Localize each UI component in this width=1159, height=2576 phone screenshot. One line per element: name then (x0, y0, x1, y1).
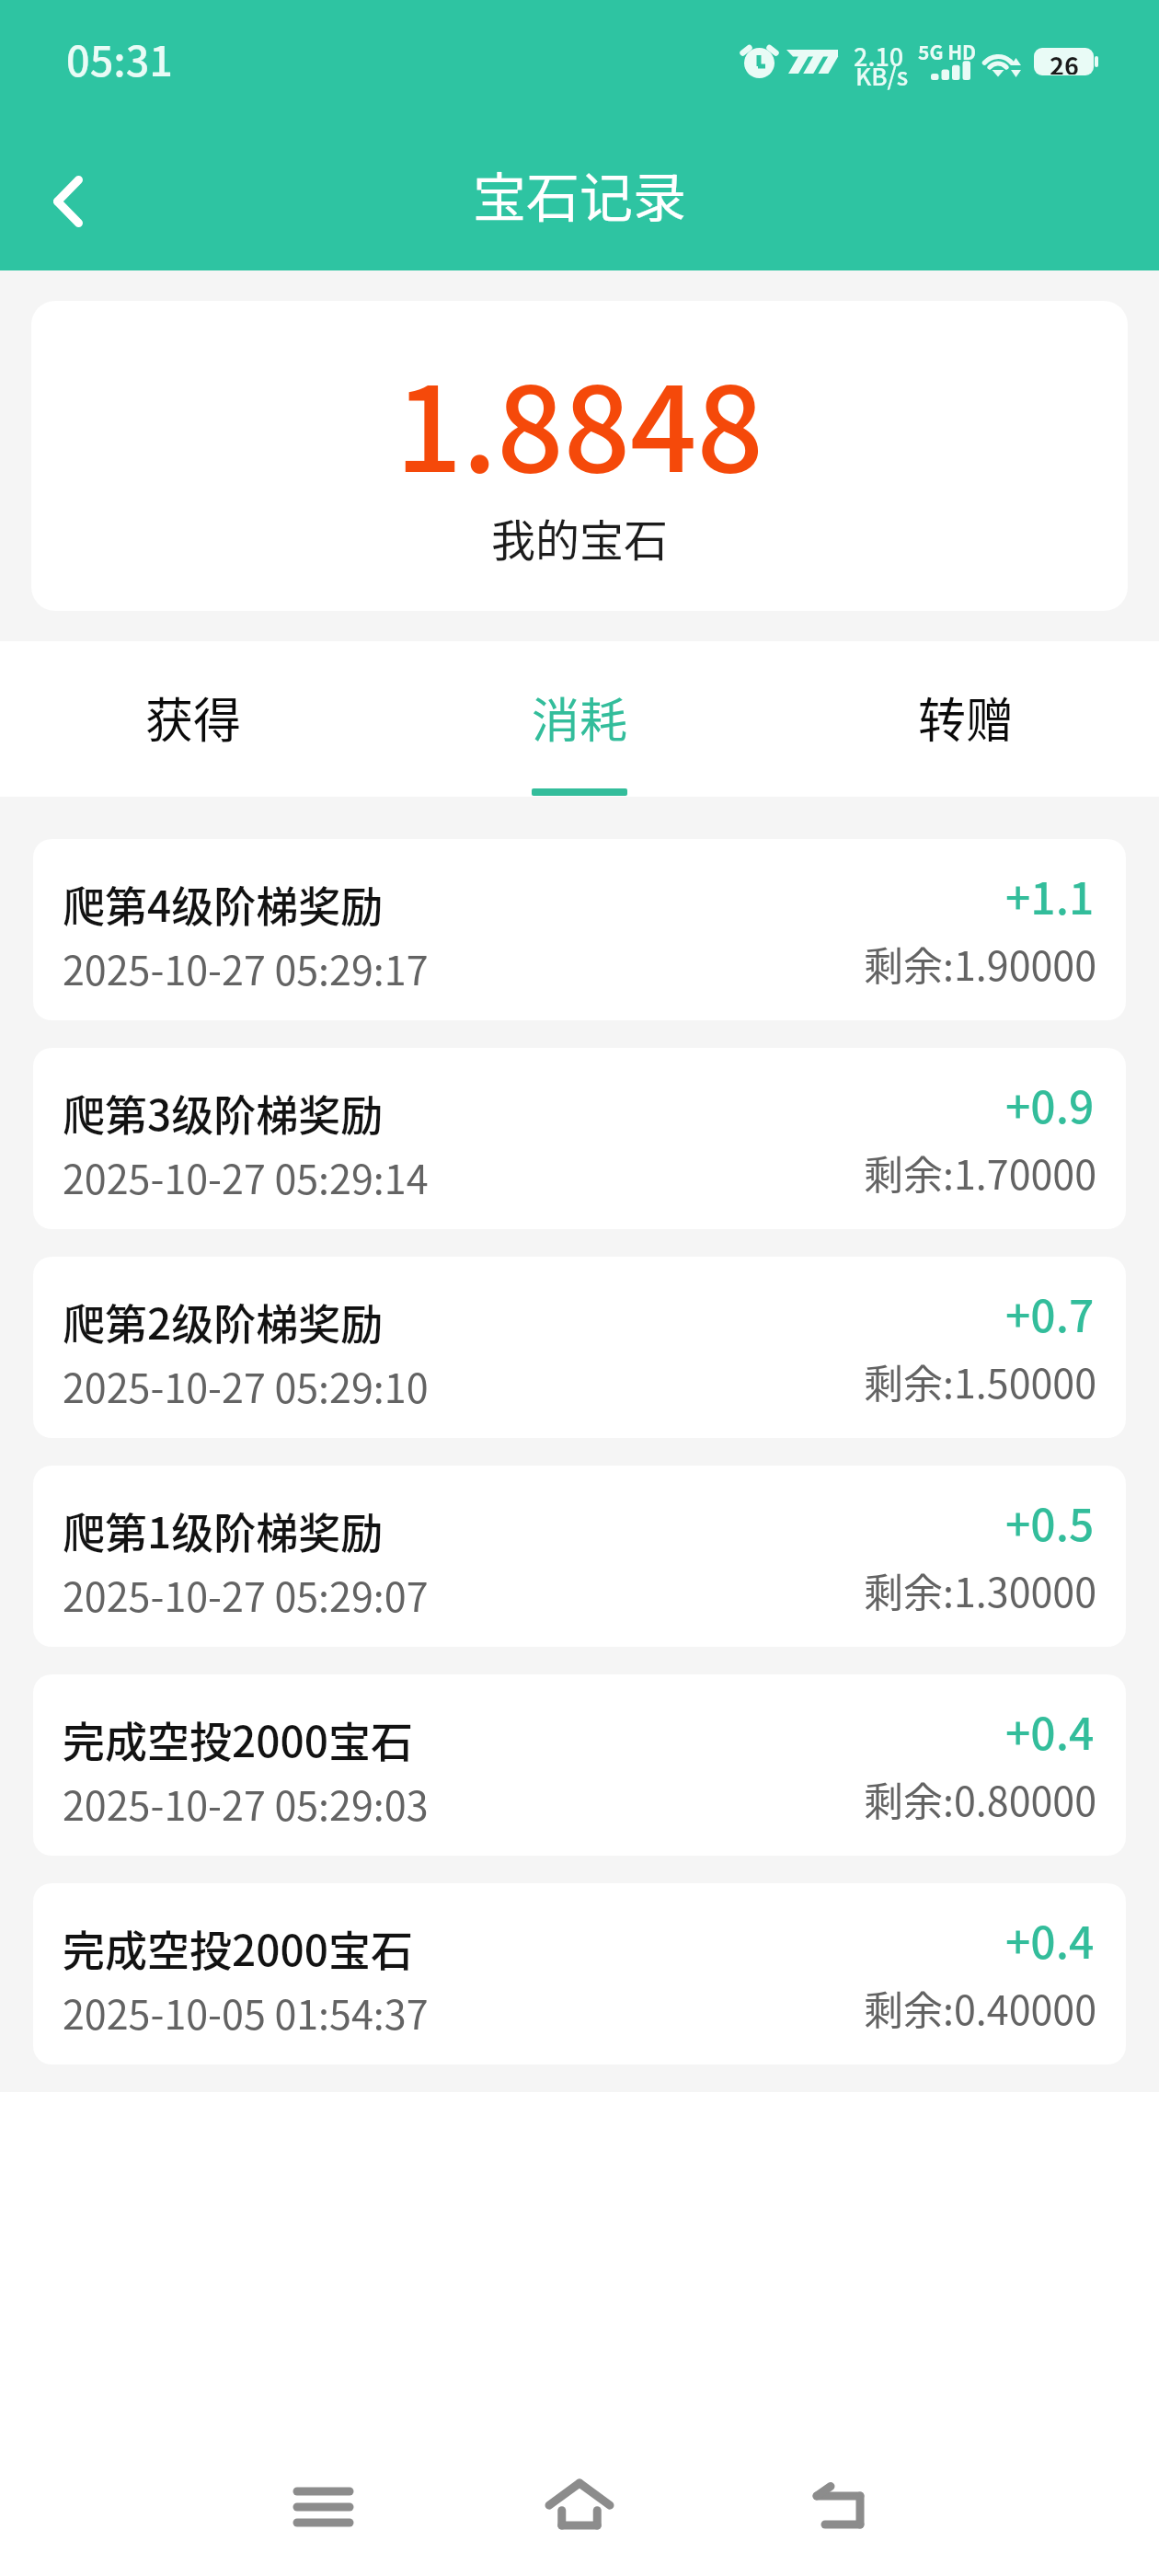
staticText: 消耗 (532, 683, 628, 752)
staticText: 2025-10-05 01:54:37 (63, 1984, 429, 2041)
button[interactable]: Recent apps (249, 2433, 396, 2576)
button[interactable]: Home (506, 2431, 653, 2576)
staticText: 剩余:1.50000 (864, 1352, 1097, 1409)
staticText: 2025-10-27 05:29:07 (63, 1566, 429, 1623)
staticText: 05:31 (66, 29, 174, 88)
staticText: 1.8848 (396, 337, 763, 506)
staticText: 2025-10-27 05:29:03 (63, 1775, 429, 1832)
staticText: 剩余:1.70000 (864, 1144, 1097, 1201)
button[interactable]: 爬第3级阶梯奖励 (33, 1048, 1126, 1229)
button[interactable]: Back (0, 122, 138, 270)
staticText: +0.7 (1005, 1281, 1095, 1345)
staticText: 爬第3级阶梯奖励 (63, 1082, 384, 1144)
staticText: +1.1 (1005, 863, 1095, 927)
staticText: 获得 (145, 683, 242, 752)
staticText: +0.9 (1005, 1072, 1095, 1136)
staticText: 2025-10-27 05:29:10 (63, 1357, 429, 1414)
button[interactable]: 爬第2级阶梯奖励 (33, 1257, 1126, 1438)
staticText: 爬第4级阶梯奖励 (63, 873, 384, 935)
staticText: 2025-10-27 05:29:17 (63, 939, 429, 996)
staticText: +0.4 (1005, 1698, 1095, 1763)
staticText: 爬第1级阶梯奖励 (63, 1500, 384, 1561)
staticText: 完成空投2000宝石 (63, 1917, 413, 1979)
staticText: 5G HD (918, 38, 977, 65)
staticText: 26 (1050, 48, 1079, 75)
staticText: 剩余:1.30000 (864, 1561, 1097, 1618)
staticText: 爬第2级阶梯奖励 (63, 1291, 384, 1352)
staticText: 2025-10-27 05:29:14 (63, 1148, 429, 1205)
button[interactable]: 转赠 (773, 641, 1159, 797)
button[interactable]: 消耗 (386, 641, 773, 797)
button[interactable]: 爬第1级阶梯奖励 (33, 1466, 1126, 1647)
staticText: 我的宝石 (491, 505, 669, 569)
staticText: 2.10 (854, 38, 904, 74)
button[interactable]: Back (764, 2432, 912, 2576)
staticText: 完成空投2000宝石 (63, 1708, 413, 1770)
staticText: 剩余:0.40000 (864, 1979, 1097, 2036)
staticText: 剩余:1.90000 (864, 935, 1097, 992)
staticText: KB/s (855, 58, 909, 93)
staticText: 宝石记录 (473, 155, 687, 233)
button[interactable]: 完成空投2000宝石 (33, 1883, 1126, 2064)
button[interactable]: 爬第4级阶梯奖励 (33, 839, 1126, 1020)
staticText: +0.5 (1005, 1489, 1095, 1554)
button[interactable]: 完成空投2000宝石 (33, 1674, 1126, 1856)
staticText: 转赠 (918, 683, 1015, 752)
staticText: 剩余:0.80000 (864, 1770, 1097, 1827)
staticText: +0.4 (1005, 1907, 1095, 1972)
button[interactable]: 获得 (0, 641, 386, 797)
